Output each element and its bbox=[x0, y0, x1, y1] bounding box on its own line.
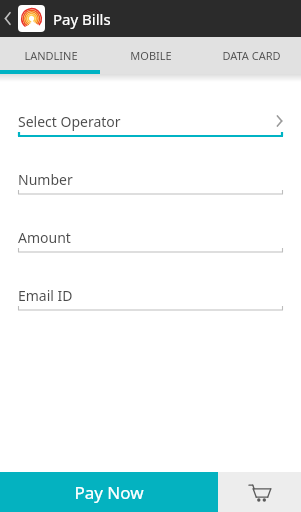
button[interactable]: Select Operator bbox=[18, 105, 283, 137]
staticText: MOBILE bbox=[130, 48, 172, 63]
staticText: DATA CARD bbox=[222, 48, 281, 63]
button[interactable]: App logo bbox=[18, 5, 45, 32]
button[interactable]: Amount bbox=[18, 221, 283, 253]
staticText: Pay Now bbox=[74, 481, 144, 504]
button[interactable]: Cart bbox=[218, 472, 301, 512]
button[interactable]: LANDLINE bbox=[0, 37, 101, 74]
button[interactable]: Email ID bbox=[18, 279, 283, 311]
button[interactable]: Number bbox=[18, 163, 283, 195]
staticText: Email ID bbox=[18, 286, 73, 305]
button[interactable]: Back bbox=[0, 0, 16, 37]
staticText: Pay Bills bbox=[53, 9, 111, 29]
button[interactable]: Pay Now bbox=[0, 472, 218, 512]
staticText: Select Operator bbox=[18, 112, 121, 131]
button[interactable]: MOBILE bbox=[101, 37, 201, 74]
button[interactable]: DATA CARD bbox=[201, 37, 301, 74]
staticText: Amount bbox=[18, 228, 71, 247]
staticText: Number bbox=[18, 170, 73, 189]
staticText: LANDLINE bbox=[24, 48, 78, 63]
